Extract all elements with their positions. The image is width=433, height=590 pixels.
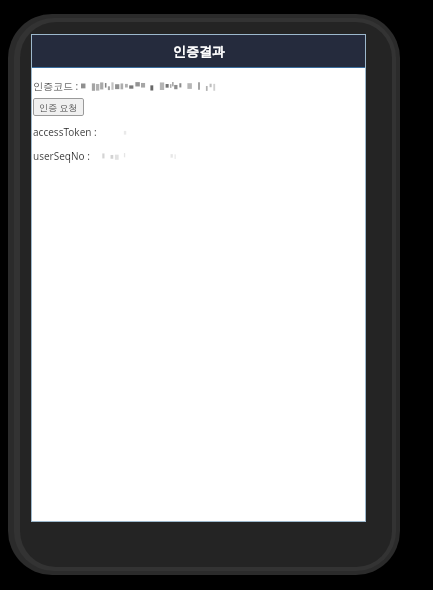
staticText: 인증코드 : [33, 79, 81, 93]
staticText: 인증결과 [173, 43, 225, 59]
staticText: accessToken : [33, 125, 100, 139]
staticText: 인증 요청 [39, 101, 78, 113]
staticText: userSeqNo : [33, 149, 93, 163]
button[interactable]: 인증 요청 [33, 98, 84, 116]
